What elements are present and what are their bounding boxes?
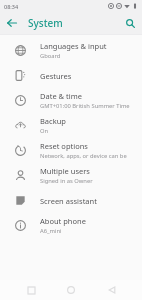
staticText: Languages & input [40,41,107,51]
button[interactable]: Date & time [0,88,142,113]
staticText: Gestures [40,71,72,81]
staticText: Screen assistant [40,196,97,206]
staticText: Backup [40,116,66,126]
button[interactable]: Back [102,280,122,300]
button[interactable]: Back [4,15,20,31]
button[interactable]: Search [122,15,138,31]
button[interactable]: Backup [0,113,142,138]
button[interactable]: Recents [21,280,41,300]
staticText: GMT+01:00 British Summer Time [40,102,130,110]
button[interactable]: Languages & input [0,38,142,63]
button[interactable]: Gestures [0,63,142,88]
staticText: About phone [40,216,86,226]
staticText: 08:34 [4,3,19,10]
staticText: Reset options [40,141,88,151]
staticText: Gboard [40,52,61,60]
button[interactable]: Screen assistant [0,188,142,213]
staticText: Network, apps, or device can be reset [40,152,136,160]
staticText: Multiple users [40,166,90,176]
button[interactable]: Home [61,280,81,300]
button[interactable]: About phone [0,213,142,238]
button[interactable]: Multiple users [0,163,142,188]
staticText: A6_mini [40,227,62,235]
staticText: System [28,16,63,30]
staticText: Signed in as Owner [40,177,93,185]
button[interactable]: Reset options [0,138,142,163]
staticText: Date & time [40,91,82,101]
staticText: On [40,127,49,135]
